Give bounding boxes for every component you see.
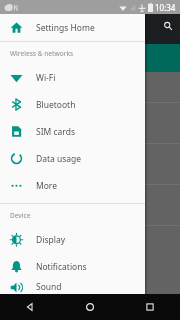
button[interactable]	[0, 144, 180, 184]
staticText: 10:34	[155, 2, 176, 13]
button[interactable]	[0, 44, 180, 72]
button[interactable]	[0, 103, 180, 143]
button[interactable]: Home	[60, 294, 120, 320]
button[interactable]	[0, 185, 180, 225]
button[interactable]: SIM cards	[0, 118, 145, 145]
staticText: More	[36, 180, 57, 192]
button[interactable]: Settings Home	[0, 14, 145, 41]
staticText: Wireless & networks	[10, 49, 74, 58]
staticText: Notifications	[36, 261, 87, 273]
button[interactable]: Display	[0, 226, 145, 253]
button[interactable]: Search	[160, 18, 176, 34]
button[interactable]: Bluetooth	[0, 91, 145, 118]
button[interactable]: Sound	[0, 280, 145, 294]
button[interactable]: Back	[0, 294, 60, 320]
button[interactable]: More	[0, 172, 145, 199]
button[interactable]	[0, 72, 180, 102]
button[interactable]: Wi-Fi	[0, 64, 145, 91]
staticText: Settings Home	[36, 22, 95, 34]
button[interactable]: Notifications	[0, 253, 145, 280]
staticText: Sound	[36, 281, 62, 293]
button[interactable]: Data usage	[0, 145, 145, 172]
staticText: SIM cards	[36, 126, 75, 138]
staticText: Wi-Fi	[36, 72, 56, 84]
staticText: Display	[36, 234, 65, 246]
staticText: Bluetooth	[36, 99, 76, 111]
staticText: Data usage	[36, 153, 82, 165]
button[interactable]: Recent apps	[120, 294, 180, 320]
staticText: Device	[10, 211, 31, 220]
